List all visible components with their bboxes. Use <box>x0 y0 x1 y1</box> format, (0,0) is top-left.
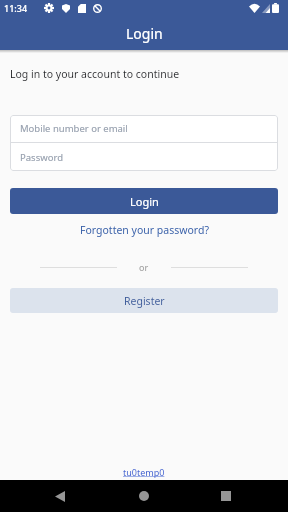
staticText: Password <box>20 151 63 164</box>
button[interactable]: tu0temp0 <box>123 466 165 478</box>
button[interactable]: Mobile number or email <box>10 115 278 142</box>
button[interactable] <box>124 480 164 512</box>
staticText: tu0temp0 <box>123 466 165 478</box>
staticText: 11:34 <box>4 2 28 14</box>
staticText: Log in to your account to continue <box>10 67 180 81</box>
button[interactable]: Forgotten your password? <box>76 219 213 241</box>
staticText: Forgotten your password? <box>80 223 209 237</box>
button[interactable] <box>206 480 246 512</box>
staticText: Login <box>130 194 159 209</box>
staticText: Register <box>124 294 165 308</box>
button[interactable]: Password <box>10 143 278 171</box>
button[interactable]: Register <box>10 288 278 313</box>
staticText: or <box>139 261 149 273</box>
button[interactable] <box>40 480 80 512</box>
button[interactable]: Login <box>10 188 278 214</box>
staticText: Login <box>126 24 163 43</box>
staticText: Mobile number or email <box>20 122 128 135</box>
